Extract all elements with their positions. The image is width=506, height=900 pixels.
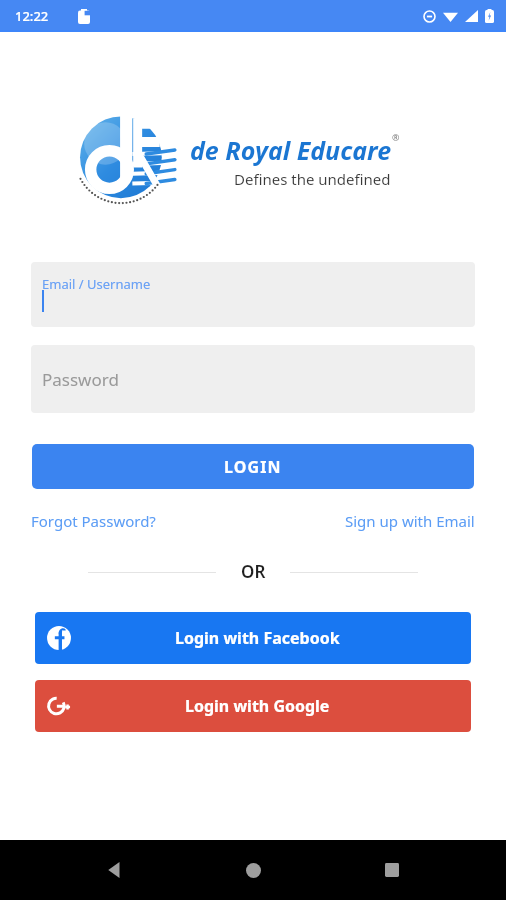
staticText: Email / Username [42, 275, 151, 293]
staticText: LOGIN [224, 456, 282, 478]
other: Google [46, 693, 72, 719]
button[interactable]: Home [229, 846, 277, 894]
button[interactable]: Password [31, 345, 475, 413]
staticText: Forgot Password? [31, 511, 156, 531]
staticText: de Royal Educare [190, 133, 392, 167]
other: Facebook [46, 625, 72, 651]
button[interactable]: Email / Username [31, 262, 475, 327]
button[interactable]: Login with Google [35, 680, 471, 732]
staticText: 12:22 [15, 7, 49, 25]
button[interactable]: Back [91, 846, 139, 894]
button[interactable]: Recent apps [368, 846, 416, 894]
staticText: Password [42, 368, 119, 391]
staticText: OR [241, 560, 266, 583]
staticText: Defines the undefined [234, 169, 391, 189]
button[interactable]: Forgot Password? [31, 511, 156, 531]
button[interactable]: Sign up with Email [345, 511, 475, 531]
button[interactable]: Login with Facebook [35, 612, 471, 664]
button[interactable]: LOGIN [32, 444, 474, 489]
staticText: Login with Google [185, 695, 330, 717]
staticText: Sign up with Email [345, 511, 475, 531]
staticText: ® [392, 131, 400, 143]
staticText: Login with Facebook [175, 627, 340, 649]
